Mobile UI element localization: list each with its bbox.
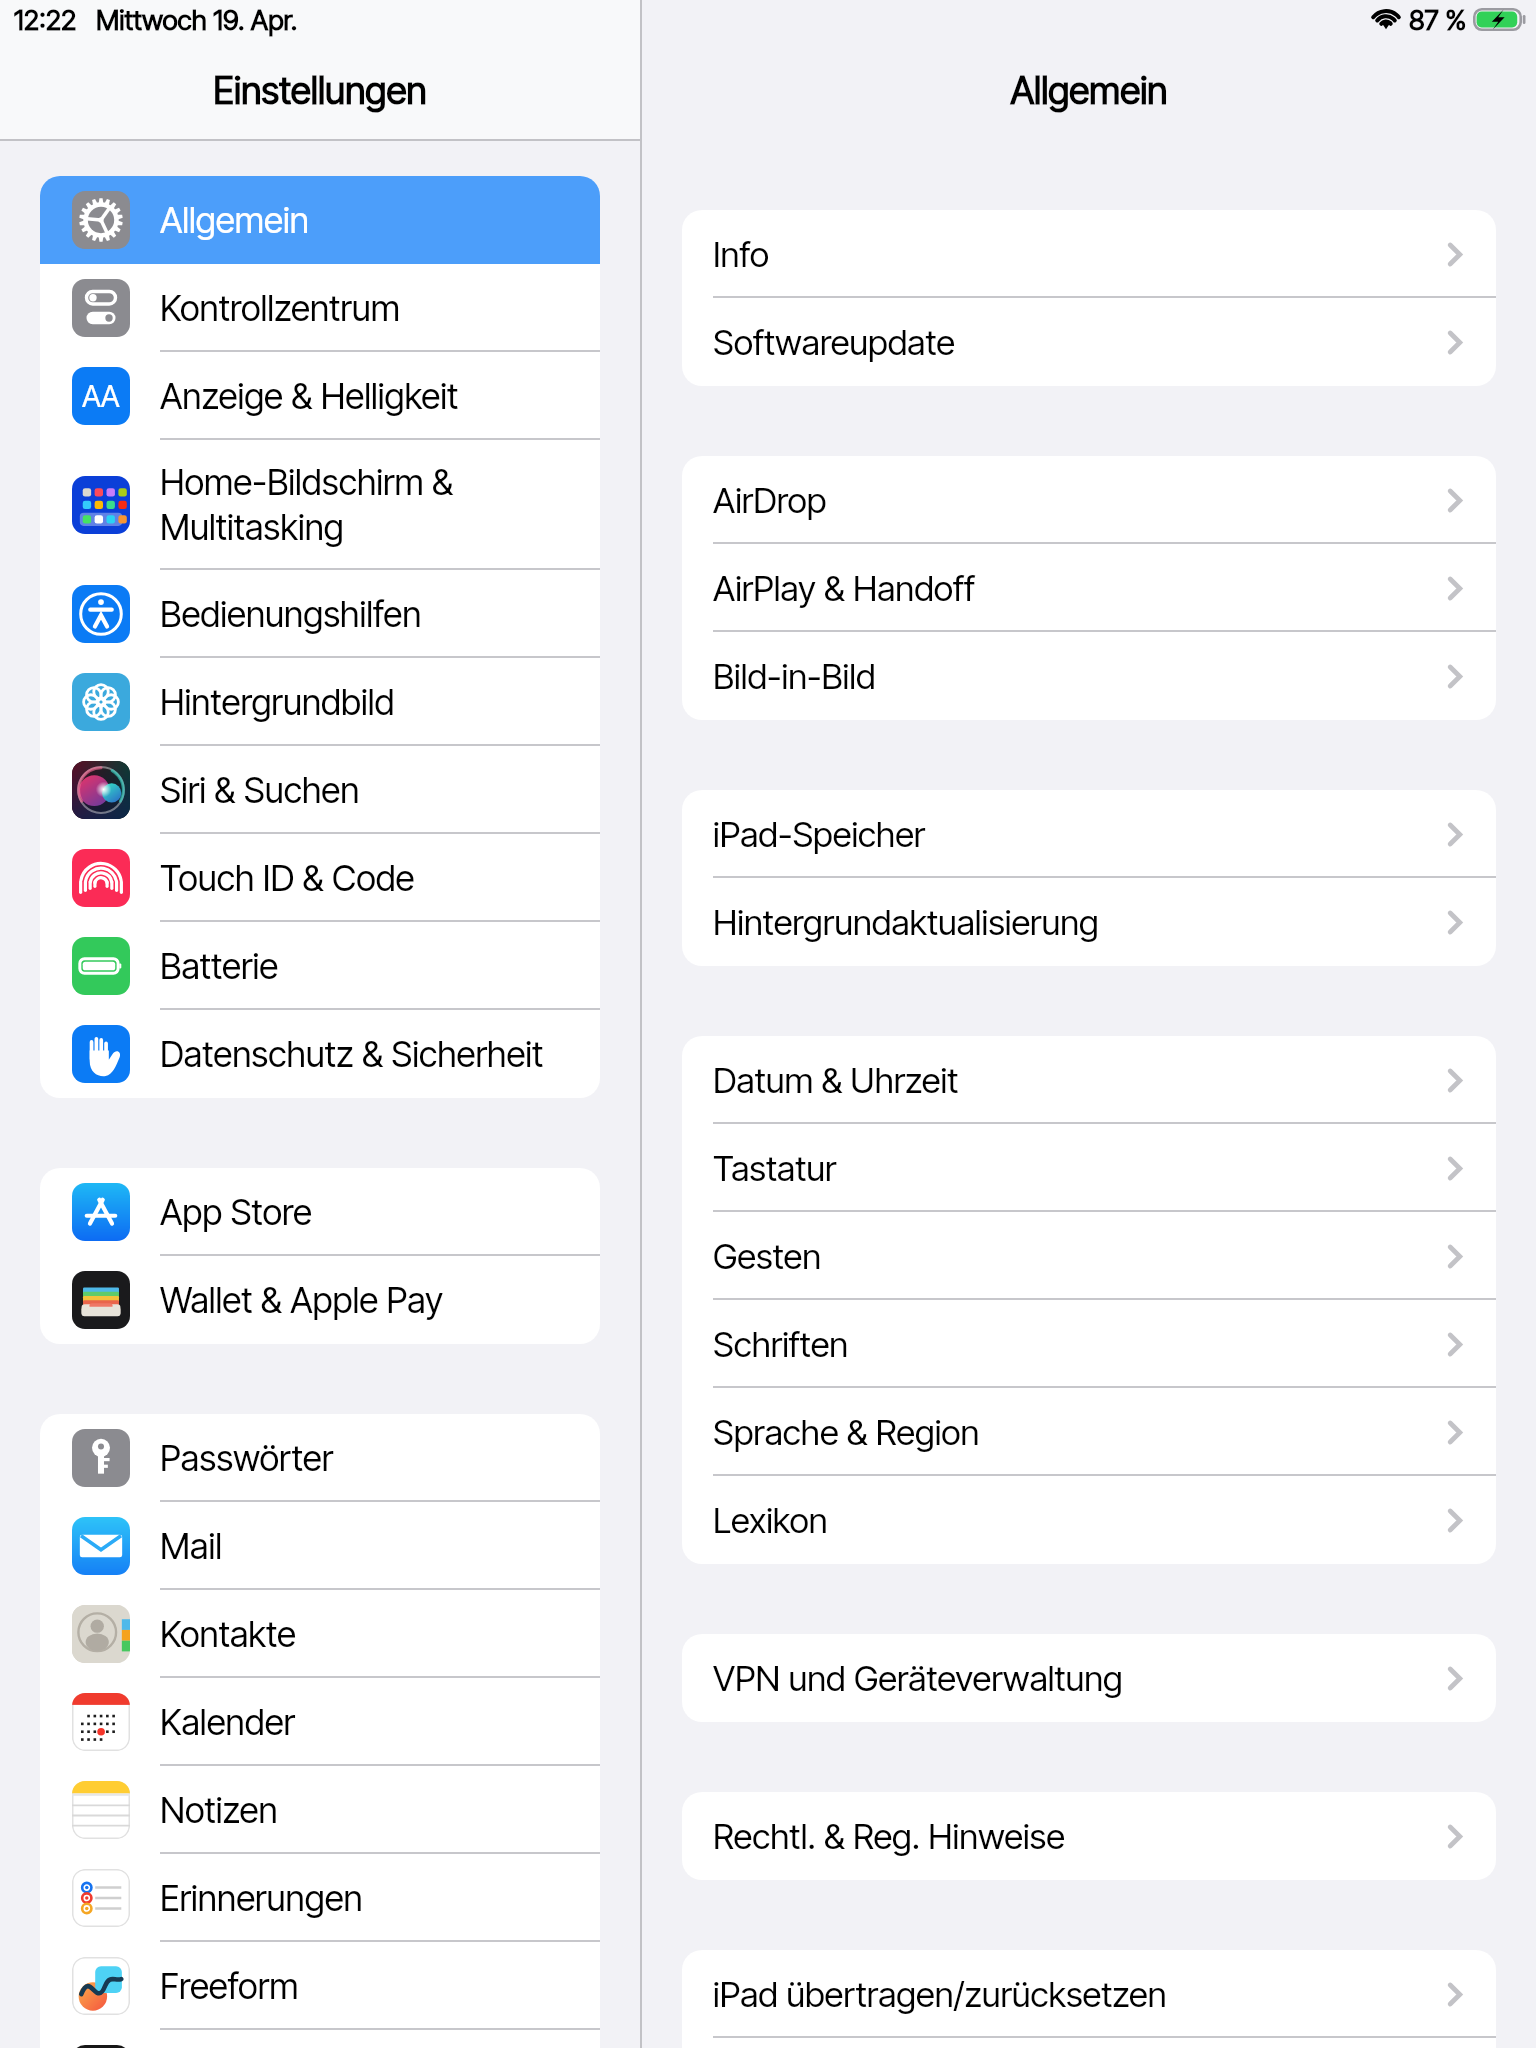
- staticText: Einstellungen: [213, 68, 427, 113]
- button[interactable]: Notizen: [40, 1766, 600, 1854]
- staticText: Allgemein: [160, 199, 309, 242]
- button[interactable]: iPad-Speicher: [682, 790, 1496, 878]
- button[interactable]: Batterie: [40, 922, 600, 1010]
- staticText: Datenschutz & Sicherheit: [160, 1033, 544, 1076]
- button[interactable]: Datenschutz & Sicherheit: [40, 1010, 600, 1098]
- button[interactable]: Kontrollzentrum: [40, 264, 600, 352]
- staticText: Kontrollzentrum: [160, 287, 400, 330]
- button[interactable]: Kontakte: [40, 1590, 600, 1678]
- button[interactable]: Sprachmemos: [40, 2030, 600, 2048]
- button[interactable]: App Store: [40, 1168, 600, 1256]
- staticText: Touch ID & Code: [160, 857, 415, 900]
- staticText: Anzeige & Helligkeit: [160, 375, 459, 418]
- staticText: VPN und Geräteverwaltung: [713, 1657, 1123, 1699]
- staticText: Hintergrundbild: [160, 681, 395, 724]
- staticText: App Store: [160, 1191, 312, 1234]
- button[interactable]: Tastatur: [682, 1124, 1496, 1212]
- staticText: Mail: [160, 1525, 222, 1568]
- staticText: Erinnerungen: [160, 1877, 363, 1920]
- button[interactable]: Home-Bildschirm & Multitasking: [40, 440, 600, 570]
- staticText: Kontakte: [160, 1613, 296, 1656]
- button[interactable]: iPad übertragen/zurücksetzen: [682, 1950, 1496, 2038]
- button[interactable]: Mail: [40, 1502, 600, 1590]
- other: Batterie 87 Prozent, wird geladen: [1473, 8, 1526, 31]
- button[interactable]: Touch ID & Code: [40, 834, 600, 922]
- staticText: Kalender: [160, 1701, 296, 1744]
- staticText: AA: [82, 378, 120, 414]
- staticText: Tastatur: [713, 1147, 837, 1189]
- staticText: Mittwoch 19. Apr.: [96, 3, 298, 36]
- button[interactable]: Info: [682, 210, 1496, 298]
- staticText: Home-Bildschirm & Multitasking: [160, 461, 596, 549]
- button[interactable]: Lexikon: [682, 1476, 1496, 1564]
- button[interactable]: Siri & Suchen: [40, 746, 600, 834]
- button[interactable]: Allgemein: [40, 176, 600, 264]
- button[interactable]: AirPlay & Handoff: [682, 544, 1496, 632]
- button[interactable]: VPN und Geräteverwaltung: [682, 1634, 1496, 1722]
- staticText: Info: [713, 233, 769, 275]
- staticText: Sprache & Region: [713, 1411, 980, 1453]
- button[interactable]: Wallet & Apple Pay: [40, 1256, 600, 1344]
- button[interactable]: Datum & Uhrzeit: [682, 1036, 1496, 1124]
- button[interactable]: Erinnerungen: [40, 1854, 600, 1942]
- staticText: Batterie: [160, 945, 279, 988]
- button[interactable]: Hintergrundaktualisierung: [682, 878, 1496, 966]
- staticText: iPad-Speicher: [713, 813, 926, 855]
- button[interactable]: Freeform: [40, 1942, 600, 2030]
- staticText: Siri & Suchen: [160, 769, 360, 812]
- staticText: 87 %: [1409, 3, 1467, 36]
- staticText: Softwareupdate: [713, 321, 956, 363]
- staticText: Notizen: [160, 1789, 278, 1832]
- staticText: Hintergrundaktualisierung: [713, 901, 1099, 943]
- button[interactable]: Hintergrundbild: [40, 658, 600, 746]
- staticText: Schriften: [713, 1323, 849, 1365]
- button[interactable]: AirDrop: [682, 456, 1496, 544]
- button[interactable]: AA: [40, 352, 600, 440]
- button[interactable]: Bedienungshilfen: [40, 570, 600, 658]
- staticText: AirPlay & Handoff: [713, 567, 975, 609]
- button[interactable]: Bild-in-Bild: [682, 632, 1496, 720]
- button[interactable]: Schriften: [682, 1300, 1496, 1388]
- staticText: Datum & Uhrzeit: [713, 1059, 959, 1101]
- other: WLAN: [1369, 0, 1403, 34]
- staticText: AirDrop: [713, 479, 827, 521]
- button[interactable]: Softwareupdate: [682, 298, 1496, 386]
- staticText: 12:22: [14, 3, 77, 36]
- button[interactable]: Rechtl. & Reg. Hinweise: [682, 1792, 1496, 1880]
- staticText: iPad übertragen/zurücksetzen: [713, 1973, 1167, 2015]
- staticText: Rechtl. & Reg. Hinweise: [713, 1815, 1065, 1857]
- button[interactable]: Gesten: [682, 1212, 1496, 1300]
- staticText: Gesten: [713, 1235, 822, 1277]
- button[interactable]: Passwörter: [40, 1414, 600, 1502]
- staticText: Wallet & Apple Pay: [160, 1279, 444, 1322]
- staticText: Bedienungshilfen: [160, 593, 422, 636]
- staticText: Lexikon: [713, 1499, 828, 1541]
- staticText: Passwörter: [160, 1437, 334, 1480]
- staticText: Freeform: [160, 1965, 299, 2008]
- staticText: Bild-in-Bild: [713, 655, 876, 697]
- staticText: Allgemein: [1010, 68, 1168, 113]
- button[interactable]: Kalender: [40, 1678, 600, 1766]
- button[interactable]: Sprache & Region: [682, 1388, 1496, 1476]
